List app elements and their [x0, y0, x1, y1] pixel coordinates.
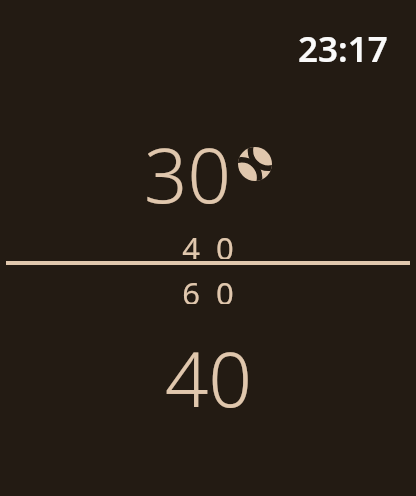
button[interactable]: 40	[0, 326, 416, 410]
button[interactable]: 30	[0, 122, 416, 206]
staticText: 23:17	[298, 25, 388, 71]
staticText: 40	[165, 326, 252, 410]
other: Serving player	[238, 147, 272, 181]
staticText: 30	[144, 122, 231, 206]
staticText: 6 0	[182, 272, 234, 304]
button[interactable]: 4 0	[0, 227, 416, 259]
button[interactable]: 23:17	[250, 25, 388, 71]
staticText: 4 0	[182, 227, 234, 259]
button[interactable]: 6 0	[0, 272, 416, 304]
